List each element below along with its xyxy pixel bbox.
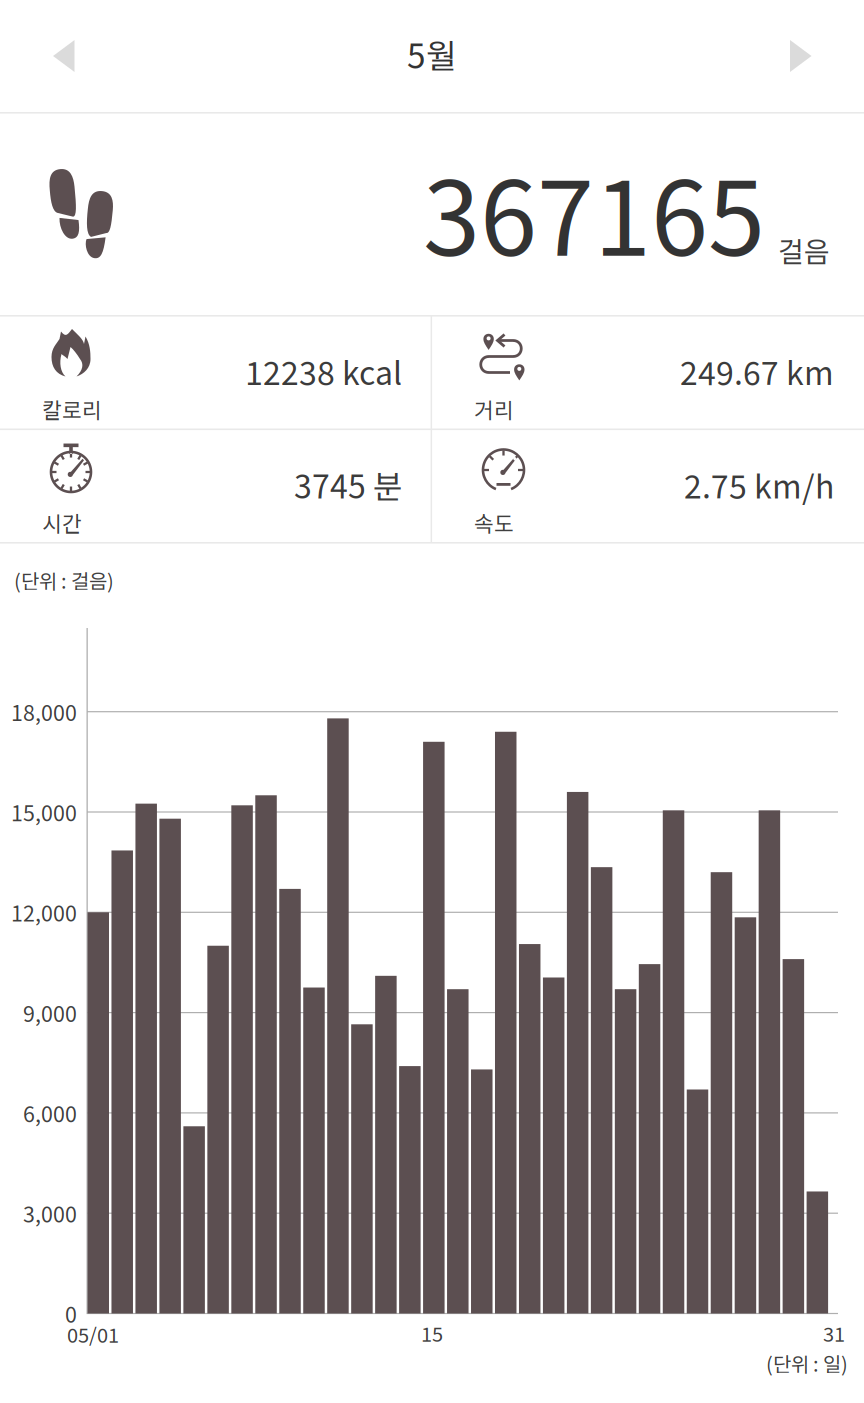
staticText: 시간 [42,507,82,538]
staticText: 5월 [407,30,457,78]
button[interactable]: Previous month [5,6,123,106]
staticText: 31 [823,1318,845,1347]
button[interactable]: Next month [741,6,859,106]
staticText: (단위 : 일) [766,1348,848,1377]
staticText: 거리 [474,394,514,424]
staticText: 2.75 km/h [684,461,834,508]
staticText: 칼로리 [42,394,102,424]
staticText: 3,000 [23,1198,77,1229]
staticText: 12,000 [11,897,77,928]
staticText: 9,000 [23,997,77,1028]
staticText: 3745 분 [294,461,402,508]
staticText: 걸음 [778,230,830,270]
staticText: 05/01 [67,1319,119,1348]
staticText: 속도 [474,507,514,538]
staticText: 15,000 [11,797,77,827]
staticText: (단위 : 걸음) [14,565,114,594]
staticText: 12238 kcal [245,348,402,394]
staticText: 15 [421,1318,443,1347]
staticText: 249.67 km [680,348,834,394]
staticText: 367165 [423,137,765,285]
staticText: 18,000 [11,696,77,727]
staticText: 6,000 [23,1097,77,1128]
staticText: 0 [65,1298,77,1329]
